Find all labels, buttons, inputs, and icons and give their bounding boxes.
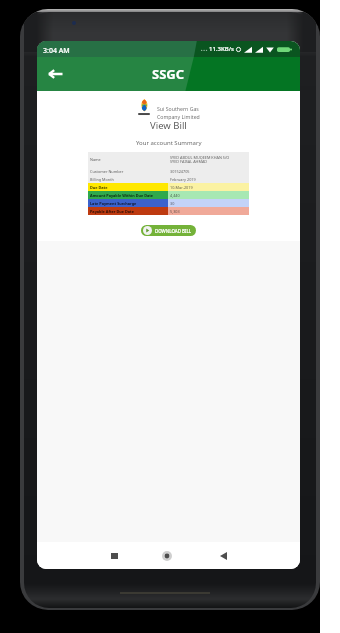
staticText: Your account Summary: [136, 139, 202, 147]
button[interactable]: Recent apps: [99, 542, 129, 569]
staticText: Amount Payable Within Due Date: [90, 193, 154, 198]
staticText: 5,303: [170, 209, 180, 214]
staticText: Billing Month: [90, 177, 114, 182]
staticText: 301524705: [170, 169, 190, 174]
staticText: Due Date: [90, 185, 108, 190]
staticText: SYED ABDUL MUQEEM KHAN S/O SYED FAISAL A…: [170, 155, 230, 164]
staticText: Late Payment Surcharge: [90, 201, 137, 206]
staticText: Payable After Due Date: [90, 209, 135, 214]
staticText: DOWNLOAD BILL: [155, 228, 192, 234]
button[interactable]: DOWNLOAD BILL: [141, 225, 196, 236]
staticText: Customer Number: [90, 169, 124, 174]
button[interactable]: Back: [208, 542, 238, 569]
staticText: 10-Mar-2019: [170, 185, 193, 190]
staticText: Name: [90, 157, 101, 162]
staticText: 3:04 AM: [43, 46, 70, 56]
button[interactable]: Back: [42, 61, 68, 87]
staticText: View Bill: [150, 119, 187, 132]
staticText: 30: [170, 201, 175, 206]
staticText: 4,440: [170, 193, 180, 198]
staticText: SSGC: [152, 65, 185, 83]
staticText: Sui Southern Gas: [157, 105, 199, 112]
staticText: February 2019: [170, 177, 196, 182]
staticText: Company Limited: [157, 113, 200, 120]
staticText: 11.3KB/s: [209, 45, 234, 53]
button[interactable]: Home: [152, 542, 182, 569]
